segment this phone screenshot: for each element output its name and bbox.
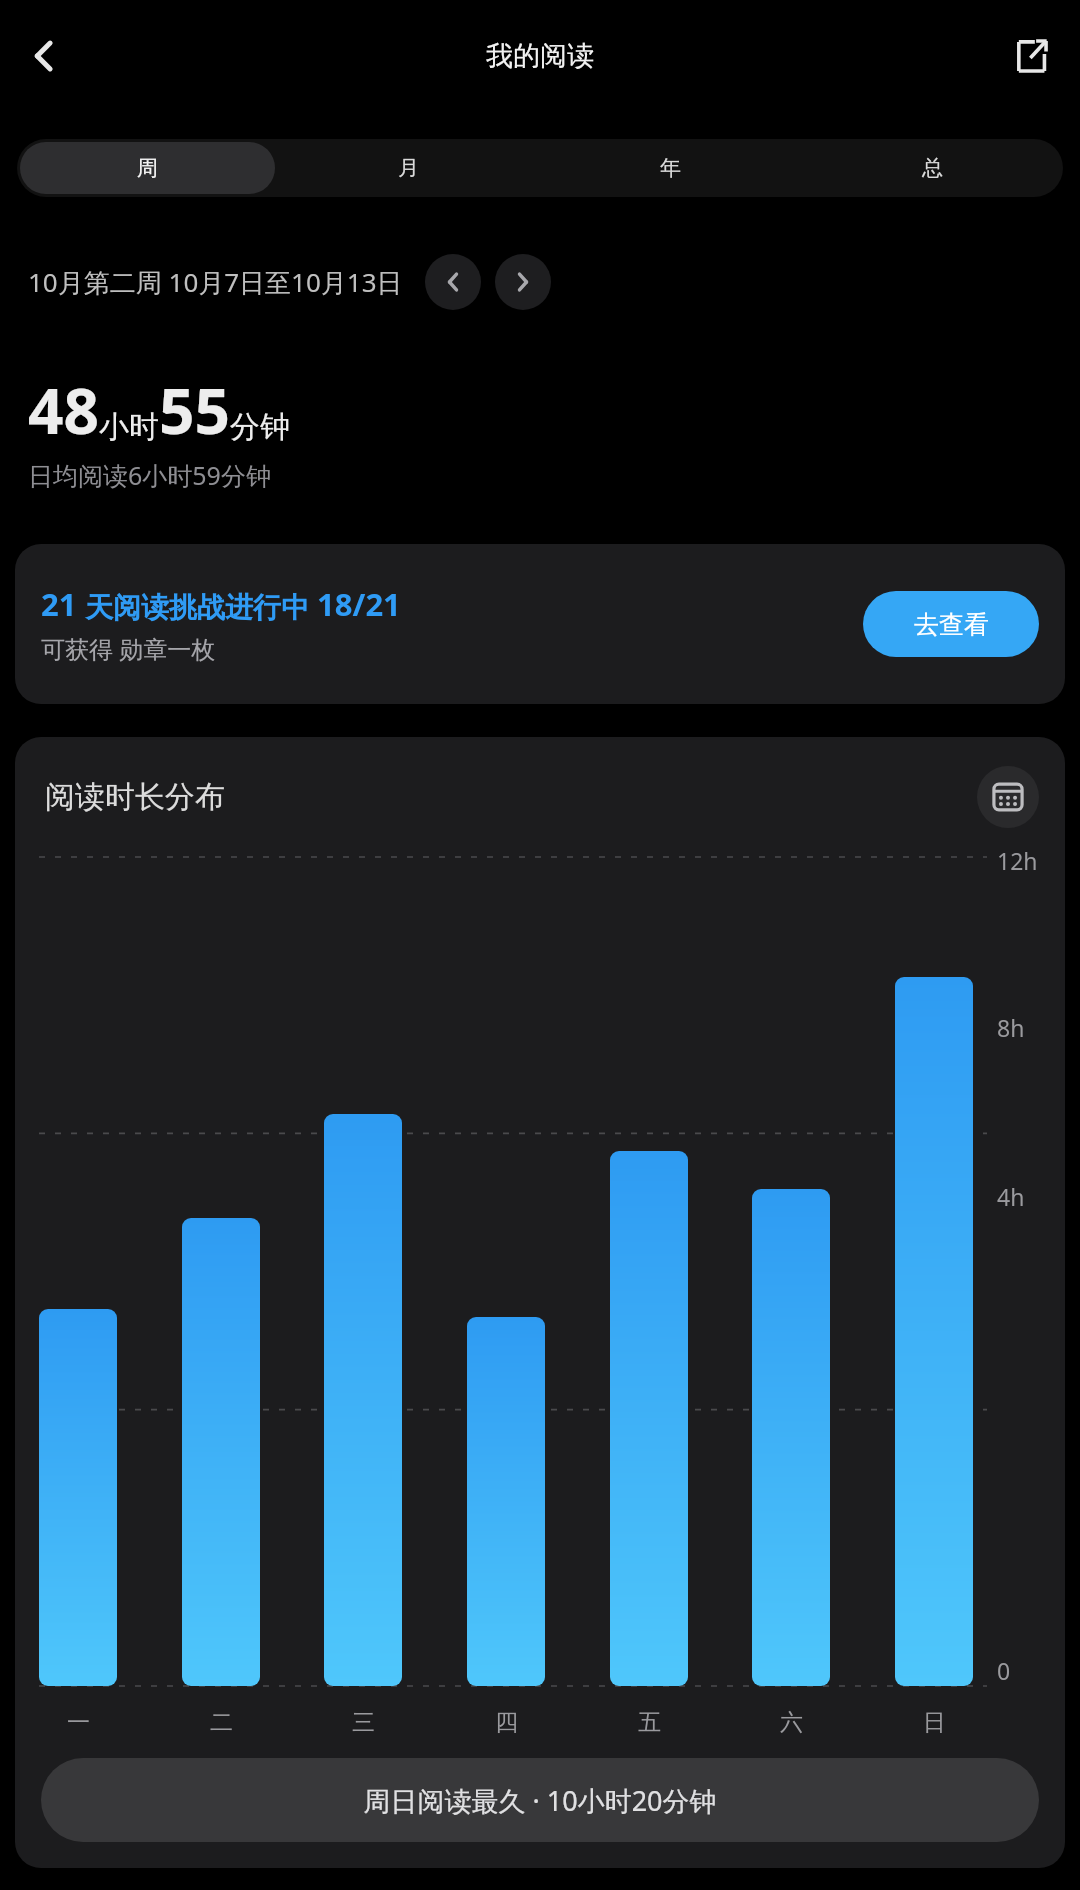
staticText: 六 <box>780 1708 803 1737</box>
staticText: 日 <box>923 1708 946 1737</box>
button[interactable]: 总 <box>804 142 1060 194</box>
button[interactable] <box>752 1189 830 1686</box>
button[interactable] <box>610 1151 688 1686</box>
button[interactable]: 月 <box>281 142 536 194</box>
staticText: 21 <box>41 583 85 625</box>
staticText: 小时 <box>99 408 159 446</box>
button[interactable]: Previous week <box>425 254 481 310</box>
staticText: 年 <box>660 155 681 181</box>
button[interactable] <box>324 1114 402 1686</box>
staticText: 日均阅读6小时59分钟 <box>28 458 271 492</box>
staticText: 天阅读挑战进行中 <box>85 590 309 625</box>
button[interactable]: Next week <box>495 254 551 310</box>
staticText: 55 <box>159 368 230 452</box>
staticText: 周日阅读最久 · 10小时20分钟 <box>363 1782 717 1819</box>
button[interactable]: 21 <box>15 544 1065 704</box>
staticText: 0 <box>997 1655 1011 1686</box>
button[interactable] <box>895 977 973 1686</box>
staticText: 10月第二周 10月7日至10月13日 <box>28 264 403 300</box>
button[interactable] <box>39 1309 117 1686</box>
staticText: 12h <box>997 845 1038 876</box>
staticText: 总 <box>922 155 943 181</box>
staticText: 8h <box>997 1012 1025 1043</box>
button[interactable]: 周日阅读最久 · 10小时20分钟 <box>41 1758 1039 1842</box>
button[interactable]: Back <box>12 24 76 88</box>
staticText: 我的阅读 <box>486 39 594 73</box>
staticText: 18/21 <box>309 583 401 625</box>
staticText: 48 <box>28 368 99 452</box>
staticText: 4h <box>997 1181 1025 1212</box>
staticText: 五 <box>638 1708 661 1737</box>
staticText: 月 <box>398 155 419 181</box>
button[interactable]: 去查看 <box>863 591 1039 657</box>
button[interactable] <box>467 1317 545 1686</box>
staticText: 去查看 <box>914 609 989 640</box>
button[interactable]: Calendar <box>977 766 1039 828</box>
staticText: 四 <box>495 1708 518 1737</box>
button[interactable]: 周 <box>20 142 275 194</box>
staticText: 三 <box>352 1708 375 1737</box>
staticText: 阅读时长分布 <box>45 778 225 816</box>
button[interactable]: 年 <box>542 142 798 194</box>
staticText: 可获得 勋章一枚 <box>41 632 216 665</box>
staticText: 分钟 <box>230 408 290 446</box>
staticText: 周 <box>137 155 158 181</box>
button[interactable]: Share <box>1000 25 1062 87</box>
button[interactable] <box>182 1218 260 1686</box>
staticText: 二 <box>210 1708 233 1737</box>
staticText: 一 <box>67 1708 90 1737</box>
